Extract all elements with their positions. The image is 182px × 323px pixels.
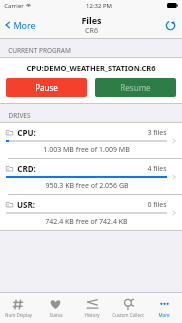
staticText: Resume <box>120 82 151 93</box>
staticText: More <box>13 19 36 31</box>
staticText: Status <box>49 312 63 318</box>
button[interactable]: Resume <box>95 78 176 97</box>
staticText: 4 files <box>147 164 167 174</box>
button[interactable]: Refresh <box>159 14 182 37</box>
staticText: DRIVES <box>8 111 31 120</box>
staticText: CRD: <box>17 163 36 174</box>
staticText: CR6 <box>85 26 98 36</box>
staticText: CURRENT PROGRAM <box>8 46 71 55</box>
staticText: 742.4 KB free of 742.4 KB <box>45 217 128 227</box>
button[interactable]: CRD: <box>0 159 182 194</box>
button[interactable]: More <box>146 293 182 323</box>
staticText: Custom Collect <box>112 312 144 318</box>
staticText: CPU:DEMO_WEATHER_STATION.CR6 <box>26 63 156 73</box>
button[interactable]: Custom Collect <box>110 293 146 323</box>
staticText: Files <box>81 14 102 26</box>
button[interactable]: USR: <box>0 195 182 230</box>
staticText: 3 files <box>147 128 167 138</box>
staticText: History <box>84 312 100 318</box>
button[interactable]: History <box>74 293 110 323</box>
button[interactable]: Num Display <box>0 293 37 323</box>
staticText: Pause <box>35 82 58 93</box>
button[interactable]: Status <box>37 293 74 323</box>
staticText: More <box>158 312 170 318</box>
staticText: 950.3 KB free of 2.056 GB <box>45 181 129 191</box>
staticText: CPU: <box>17 127 36 138</box>
button[interactable]: CPU: <box>0 123 182 158</box>
button[interactable]: Pause <box>6 78 87 97</box>
staticText: Num Display <box>5 312 32 318</box>
staticText: 0 files <box>147 200 167 210</box>
button[interactable]: More <box>0 15 40 35</box>
staticText: 1.003 MB free of 1.009 MB <box>43 145 130 155</box>
staticText: 12:32 PM <box>86 2 112 10</box>
staticText: Carrier <box>4 2 24 10</box>
staticText: USR: <box>17 199 35 210</box>
